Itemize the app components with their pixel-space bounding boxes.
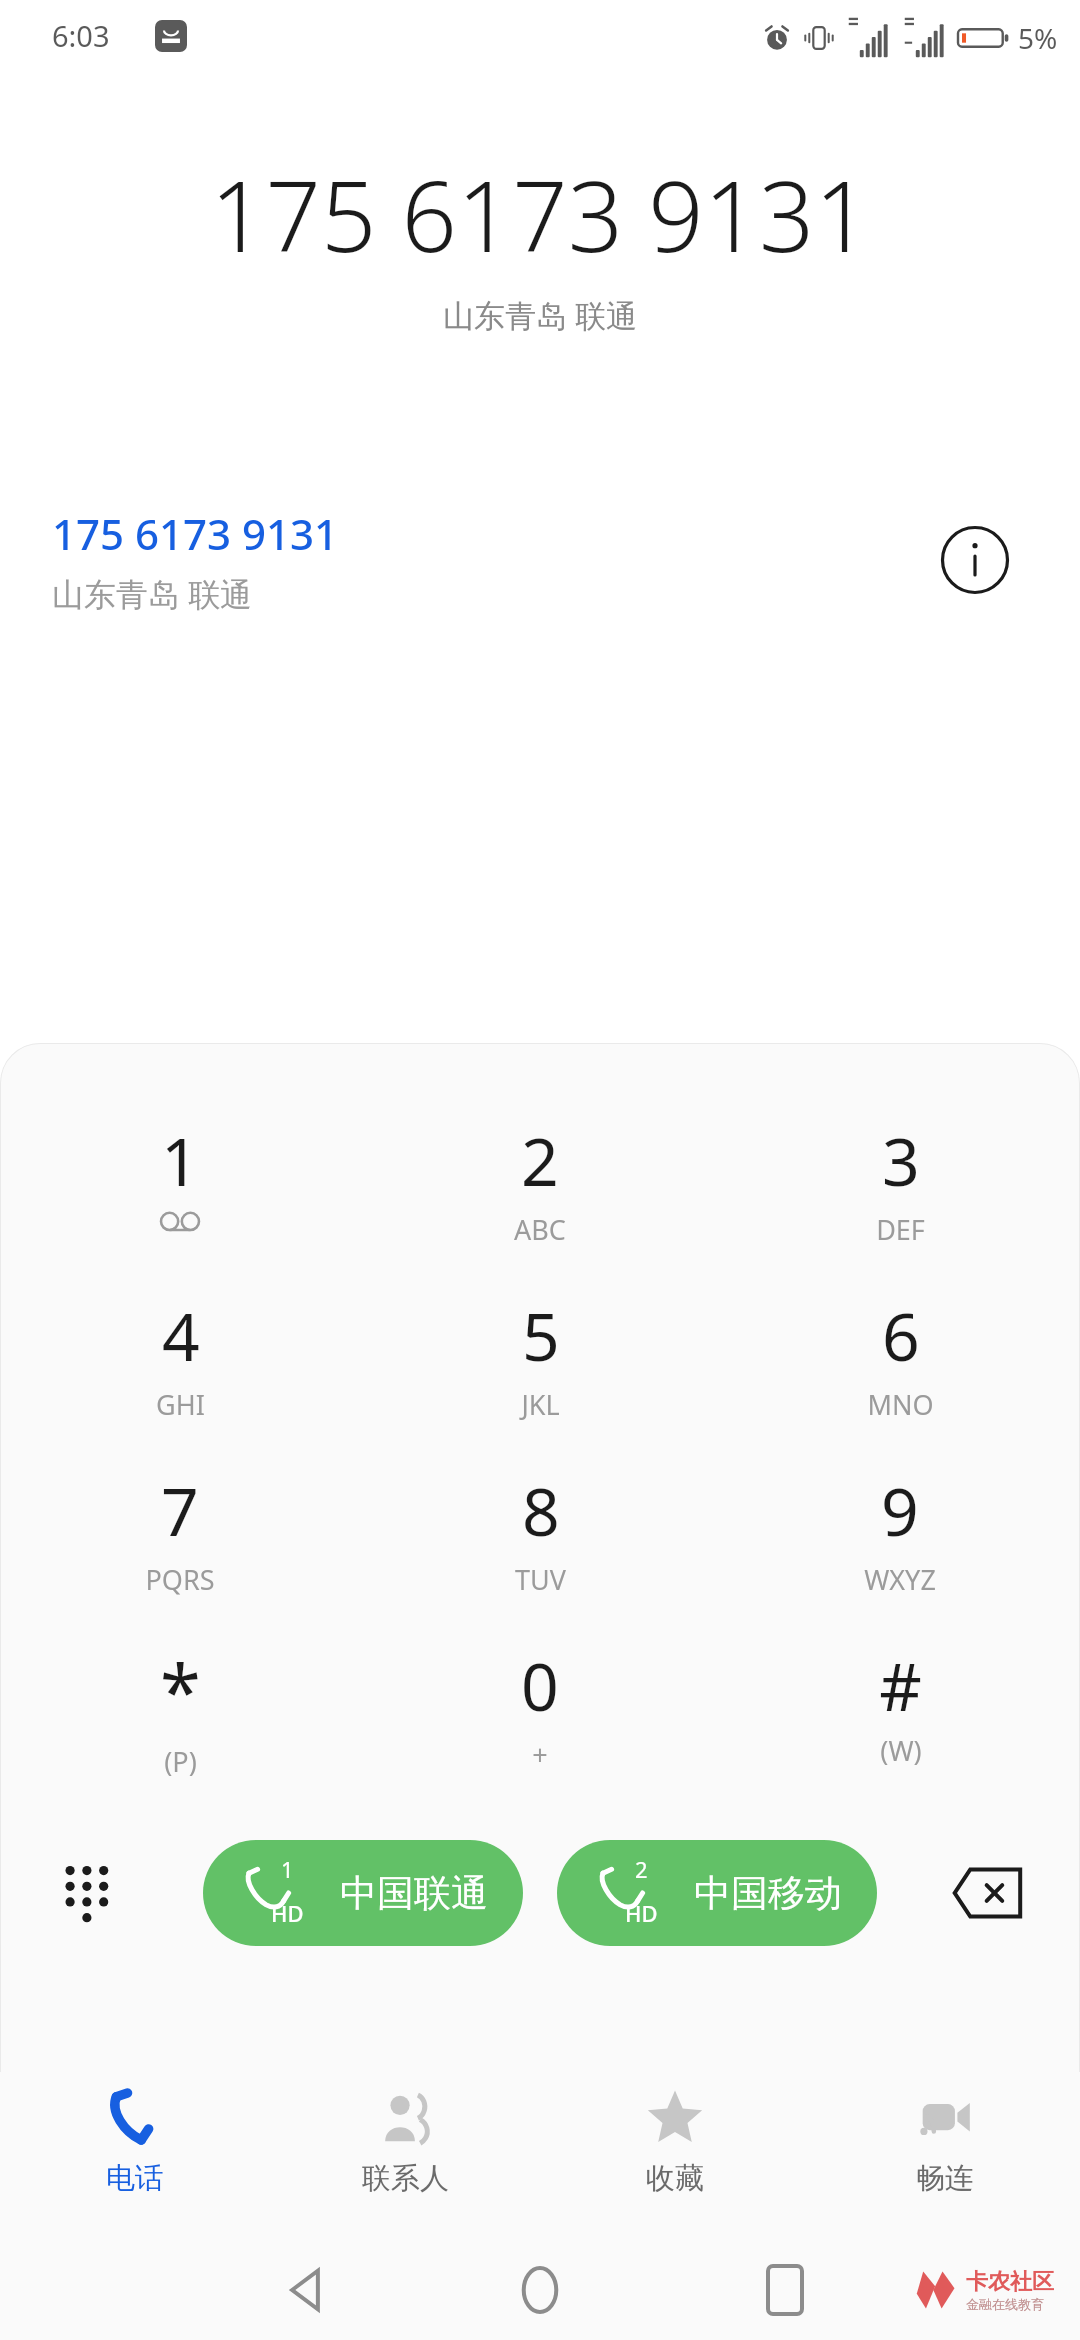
button[interactable]: * [0, 1634, 360, 1809]
button[interactable]: Info [920, 505, 1030, 615]
staticText: 收藏 [646, 2160, 704, 2197]
staticText: DEF [876, 1211, 925, 1248]
staticText: 175 6173 9131 [52, 505, 339, 562]
staticText: 联系人 [362, 2160, 449, 2197]
staticText: 0 [521, 1640, 559, 1730]
staticText: 6:03 [52, 16, 110, 55]
button[interactable]: 4 [0, 1284, 360, 1459]
staticText: HD [625, 1898, 658, 1928]
staticText: 畅连 [916, 2160, 974, 2197]
button[interactable]: 3 [720, 1109, 1080, 1284]
staticText: 175 6173 9131 [210, 148, 870, 280]
button[interactable]: 1 [0, 1109, 360, 1284]
staticText: # [879, 1640, 922, 1730]
button[interactable]: 2 [557, 1840, 877, 1946]
staticText: 山东青岛 联通 [52, 572, 253, 616]
staticText: 9 [881, 1465, 919, 1555]
staticText: 6 [882, 1290, 920, 1380]
staticText: + [532, 1736, 548, 1773]
staticText: (P) [164, 1743, 197, 1780]
button[interactable]: 2 [360, 1109, 720, 1284]
button[interactable]: Hide keypad [40, 1845, 136, 1941]
button[interactable]: 电话 [0, 2072, 270, 2240]
staticText: (W) [880, 1732, 922, 1769]
button[interactable]: 7 [0, 1459, 360, 1634]
staticText: ABC [514, 1211, 566, 1248]
button[interactable]: # [720, 1634, 1080, 1809]
staticText: 5 [522, 1290, 560, 1380]
staticText: * [160, 1640, 201, 1741]
button[interactable]: 畅连 [810, 2072, 1080, 2240]
button[interactable]: 5 [360, 1284, 720, 1459]
button[interactable]: Recents [740, 2245, 830, 2335]
button[interactable]: Delete [934, 1838, 1044, 1948]
staticText: WXYZ [864, 1561, 936, 1598]
staticText: 4 [162, 1290, 200, 1380]
button[interactable]: 9 [720, 1459, 1080, 1634]
staticText: 中国移动 [694, 1870, 842, 1917]
staticText: 5% [1018, 19, 1058, 57]
staticText: MNO [867, 1386, 934, 1423]
staticText: JKL [521, 1386, 560, 1423]
button[interactable]: 175 6173 9131 [0, 490, 1080, 630]
staticText: 电话 [106, 2160, 164, 2197]
button[interactable]: 收藏 [540, 2072, 810, 2240]
staticText: 卡农社区 [966, 2268, 1054, 2296]
staticText: 7 [161, 1465, 199, 1555]
staticText: 2 [635, 1854, 648, 1884]
staticText: 8 [522, 1465, 560, 1555]
staticText: 2 [521, 1115, 559, 1205]
staticText: 3 [882, 1115, 920, 1205]
staticText: 山东青岛 联通 [443, 294, 638, 336]
staticText: 1 [281, 1854, 294, 1884]
button[interactable]: 8 [360, 1459, 720, 1634]
button[interactable]: 联系人 [270, 2072, 540, 2240]
staticText: GHI [156, 1386, 205, 1423]
button[interactable]: 0 [360, 1634, 720, 1809]
button[interactable]: 1 [203, 1840, 523, 1946]
staticText: TUV [515, 1561, 566, 1598]
staticText: PQRS [145, 1561, 215, 1598]
button[interactable]: 6 [720, 1284, 1080, 1459]
staticText: HD [271, 1898, 304, 1928]
button[interactable]: Back [260, 2245, 350, 2335]
staticText: 中国联通 [340, 1870, 488, 1917]
staticText: 1 [161, 1115, 199, 1205]
button[interactable]: Home [495, 2245, 585, 2335]
staticText: 金融在线教育 [966, 2296, 1044, 2312]
